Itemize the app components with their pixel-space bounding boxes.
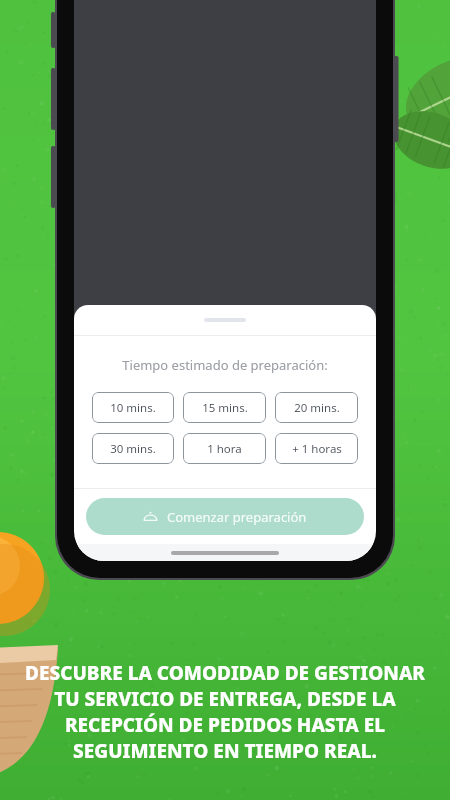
button[interactable]: 1 hora — [183, 433, 266, 464]
staticText: Comenzar preparación — [167, 508, 307, 526]
button[interactable]: + 1 horas — [275, 433, 358, 464]
staticText: 15 mins. — [202, 400, 248, 416]
button[interactable]: 30 mins. — [92, 433, 174, 464]
staticText: 1 hora — [207, 441, 242, 457]
staticText: 20 mins. — [294, 400, 340, 416]
staticText: Tiempo estimado de preparación: — [122, 356, 328, 374]
button[interactable]: 10 mins. — [92, 392, 174, 423]
other: Comenzar preparación — [143, 509, 158, 524]
button[interactable]: 20 mins. — [275, 392, 358, 423]
staticText: DESCUBRE LA COMODIDAD DE GESTIONAR TU SE… — [22, 660, 428, 764]
button[interactable]: Comenzar preparación — [86, 498, 364, 535]
button[interactable]: 15 mins. — [183, 392, 266, 423]
staticText: 10 mins. — [110, 400, 156, 416]
staticText: + 1 horas — [292, 441, 342, 457]
staticText: 30 mins. — [110, 441, 156, 457]
